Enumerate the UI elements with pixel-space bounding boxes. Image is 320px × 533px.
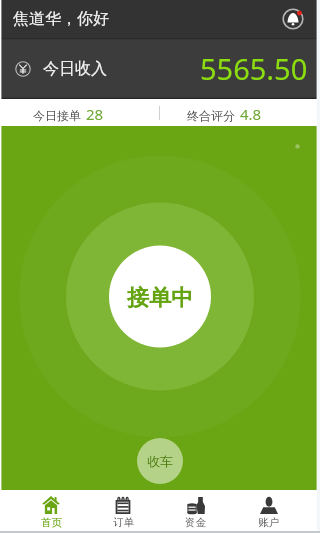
staticText: 资金	[185, 516, 206, 529]
staticText: 账户	[258, 516, 279, 529]
staticText: 今日接单	[33, 108, 81, 123]
staticText: 首页	[41, 516, 62, 529]
button[interactable]: 账户	[232, 490, 305, 533]
staticText: 28	[86, 104, 104, 124]
staticText: 接单中	[127, 284, 193, 312]
staticText: 4.8	[240, 104, 262, 124]
button[interactable]: 今日接单	[33, 103, 99, 123]
button[interactable]: 收车	[137, 438, 183, 484]
button[interactable]: 资金	[159, 490, 232, 533]
staticText: 5565.50	[200, 49, 308, 88]
button[interactable]: 接单中	[109, 246, 211, 348]
staticText: 焦道华，你好	[13, 9, 109, 29]
staticText: 今日收入	[43, 59, 107, 79]
staticText: 终合评分	[187, 108, 235, 123]
button[interactable]: 订单	[87, 490, 159, 533]
button[interactable]: 终合评分	[187, 103, 257, 123]
staticText: 订单	[113, 516, 134, 529]
button[interactable]: Notifications	[282, 8, 304, 30]
button[interactable]: 首页	[15, 490, 87, 533]
staticText: 收车	[147, 453, 173, 469]
